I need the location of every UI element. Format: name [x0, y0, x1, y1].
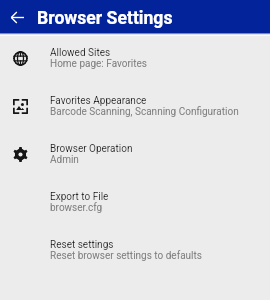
staticText: Admin [50, 154, 79, 166]
button[interactable]: Favorites Appearance [0, 82, 270, 130]
staticText: Browser Settings [37, 8, 173, 29]
staticText: Barcode Scanning, Scanning Configuration [50, 106, 239, 118]
staticText: Favorites Appearance [50, 95, 147, 107]
button[interactable]: Browser Operation [0, 130, 270, 178]
staticText: Reset settings [50, 239, 114, 251]
staticText: Allowed Sites [50, 47, 111, 59]
staticText: Export to File [50, 191, 109, 203]
staticText: Home page: Favorites [50, 58, 148, 70]
button[interactable]: Back [5, 5, 29, 29]
button[interactable]: Reset settings [0, 226, 270, 274]
button[interactable]: Allowed Sites [0, 34, 270, 82]
staticText: Browser Operation [50, 143, 133, 155]
button[interactable]: Export to File [0, 178, 270, 226]
staticText: Reset browser settings to defaults [50, 250, 202, 262]
staticText: browser.cfg [50, 202, 103, 214]
